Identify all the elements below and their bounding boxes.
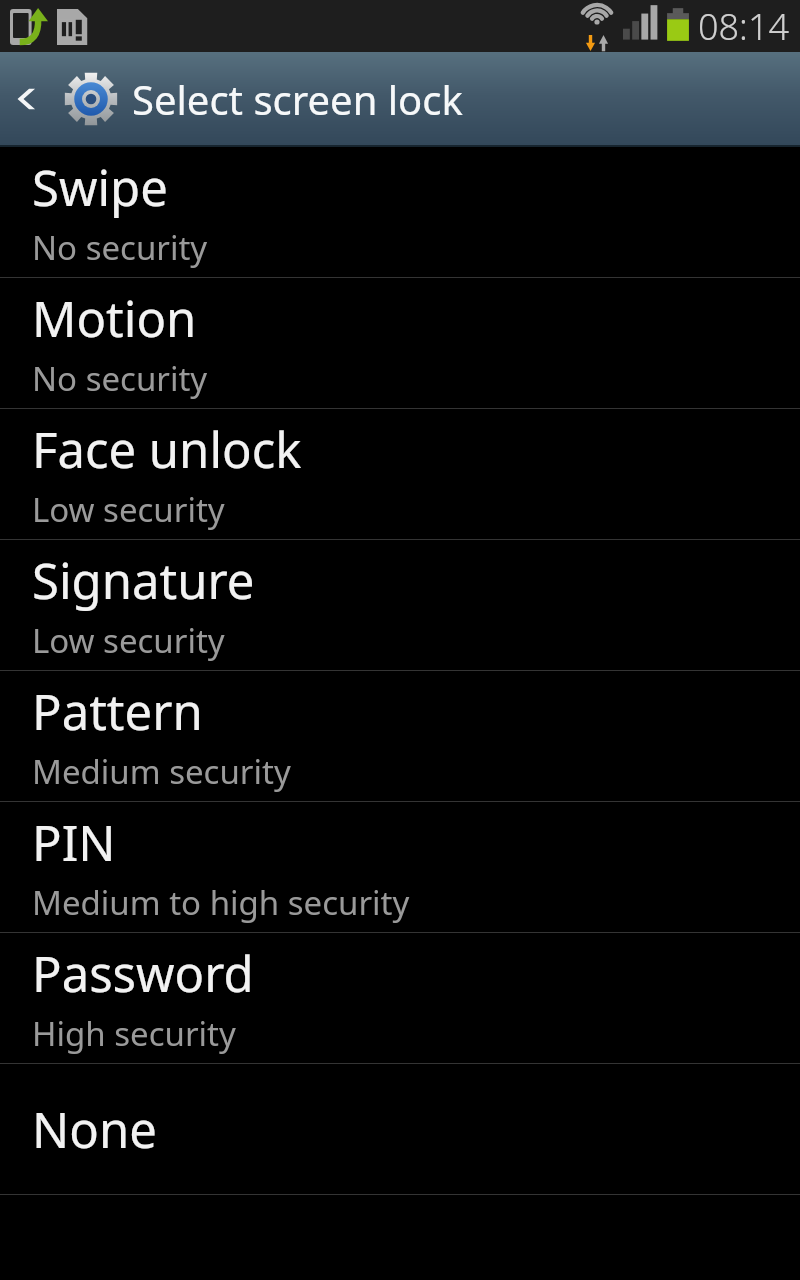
button[interactable]: Password xyxy=(0,933,800,1063)
staticText: PIN xyxy=(32,809,116,876)
staticText: Medium security xyxy=(32,749,291,794)
staticText: High security xyxy=(32,1011,236,1056)
staticText: Medium to high security xyxy=(32,880,410,925)
button[interactable]: Motion xyxy=(0,278,800,408)
staticText: Select screen lock xyxy=(132,72,463,126)
button[interactable]: Swipe xyxy=(0,147,800,277)
staticText: 08:14 xyxy=(698,2,790,51)
button[interactable]: None xyxy=(0,1064,800,1194)
button[interactable]: Pattern xyxy=(0,671,800,801)
staticText: Face unlock xyxy=(32,416,302,483)
staticText: Swipe xyxy=(32,154,168,221)
staticText: No security xyxy=(32,356,208,401)
staticText: None xyxy=(32,1096,157,1163)
button[interactable]: Signature xyxy=(0,540,800,670)
button[interactable]: Navigate up xyxy=(0,52,62,145)
button[interactable]: PIN xyxy=(0,802,800,932)
staticText: Low security xyxy=(32,618,225,663)
staticText: No security xyxy=(32,225,208,270)
staticText: Motion xyxy=(32,285,197,352)
staticText: Password xyxy=(32,940,254,1007)
staticText: Low security xyxy=(32,487,225,532)
button[interactable]: Face unlock xyxy=(0,409,800,539)
staticText: Pattern xyxy=(32,678,203,745)
staticText: Signature xyxy=(32,547,255,614)
